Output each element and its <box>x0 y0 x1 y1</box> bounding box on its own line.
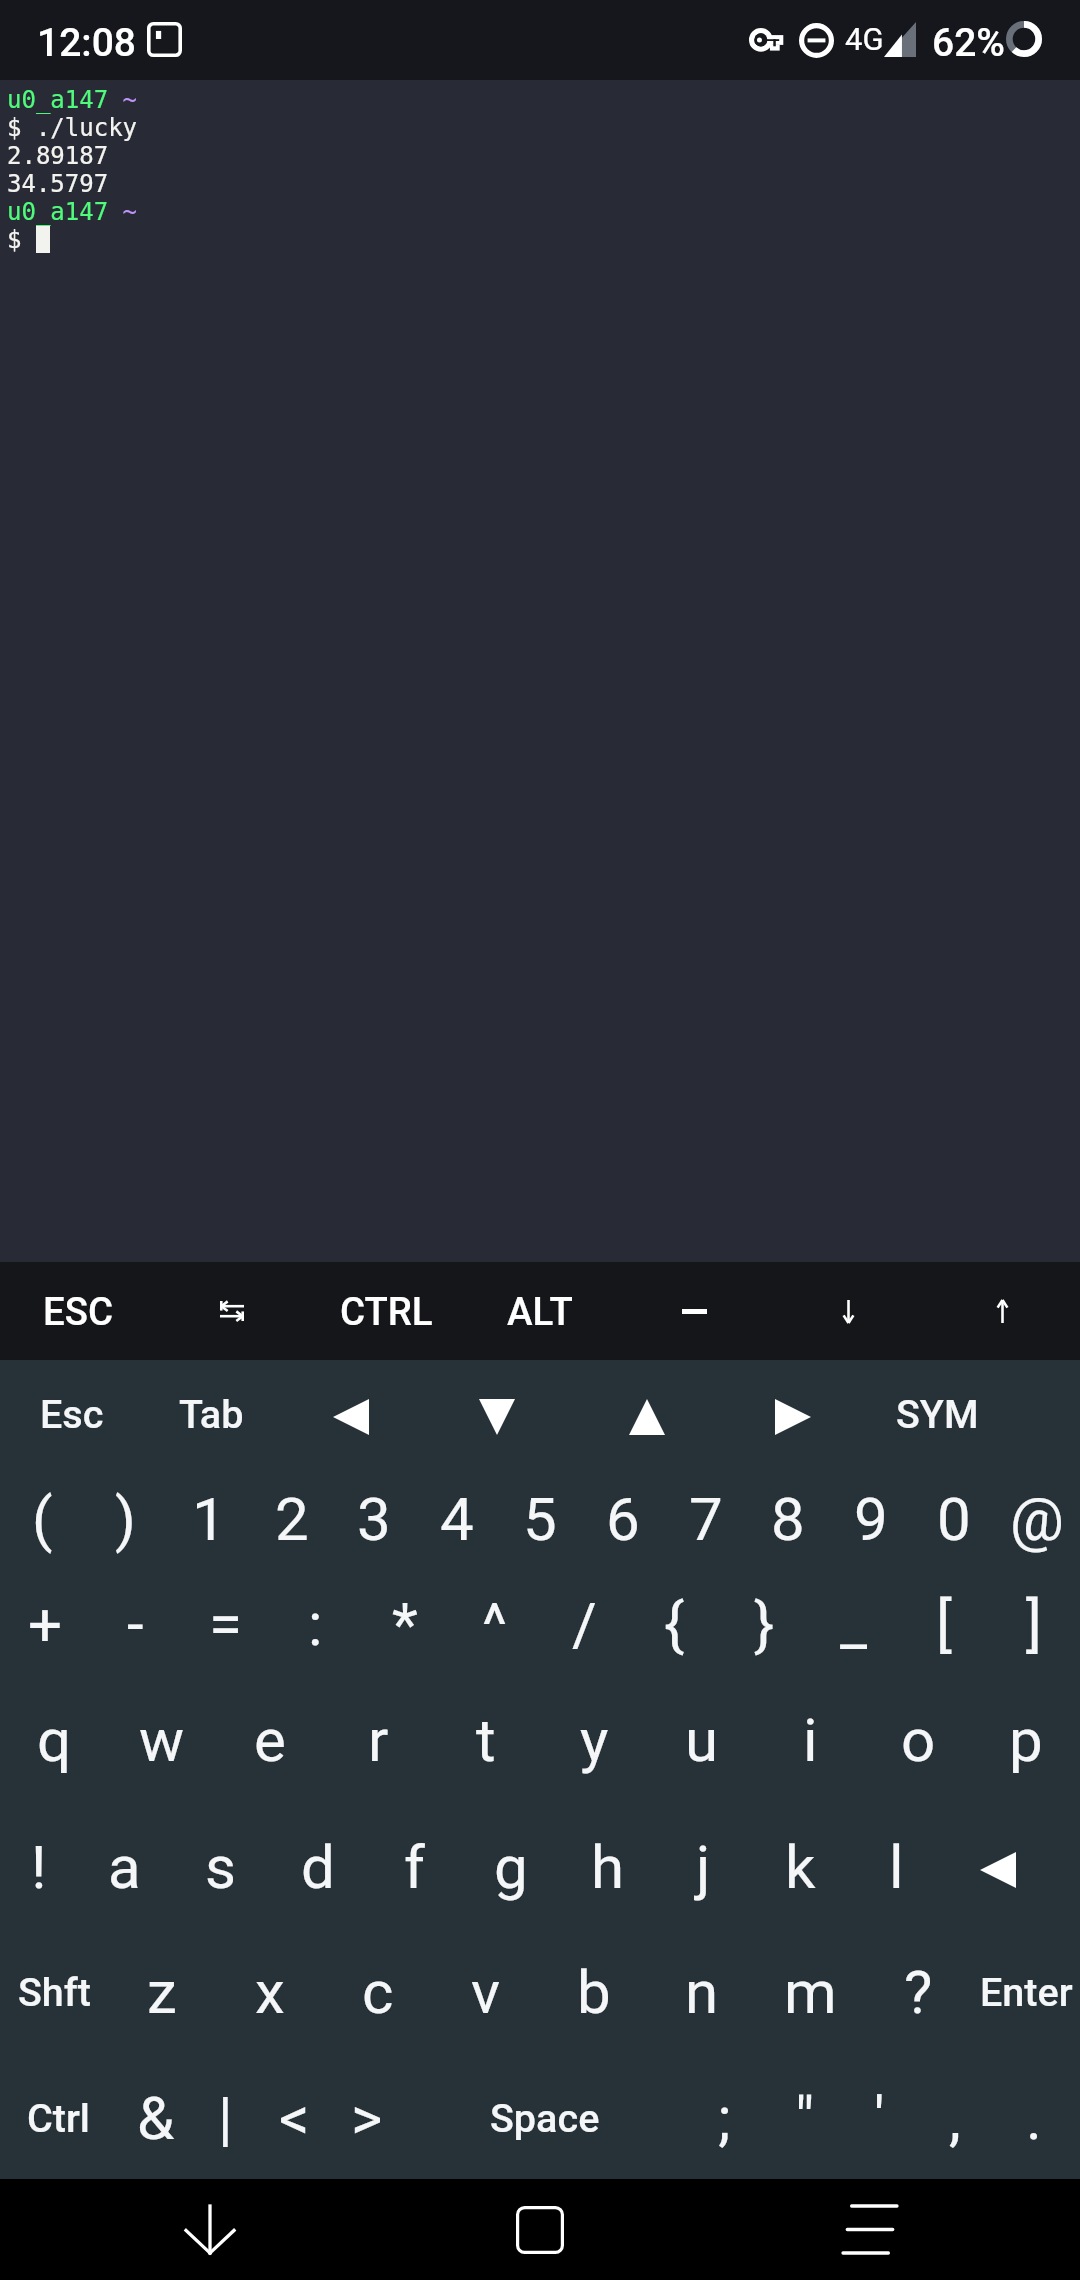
button[interactable]: : <box>270 1566 360 1682</box>
button[interactable]: e <box>216 1682 324 1798</box>
button[interactable]: ESC <box>1 1262 155 1360</box>
button[interactable]: 4 <box>415 1461 498 1577</box>
button[interactable]: n <box>648 1934 756 2050</box>
button[interactable]: u <box>648 1682 756 1798</box>
staticText: 7 <box>689 1484 723 1554</box>
staticText: 4 <box>440 1484 474 1554</box>
button[interactable]: " <box>767 2060 842 2176</box>
button[interactable]: < <box>258 2060 331 2176</box>
button[interactable]: p <box>972 1682 1080 1798</box>
button[interactable]: f <box>366 1809 463 1925</box>
button[interactable]: [ <box>899 1566 989 1682</box>
button[interactable]: Recent apps <box>800 2179 940 2280</box>
staticText: < <box>279 2083 310 2153</box>
staticText: u <box>685 1705 719 1775</box>
button[interactable]: | <box>191 2060 260 2176</box>
staticText: , <box>949 2083 961 2153</box>
button[interactable]: v <box>432 1934 540 2050</box>
button[interactable]: ] <box>989 1566 1079 1682</box>
button[interactable]: s <box>172 1809 269 1925</box>
button[interactable]: _ <box>809 1566 899 1682</box>
staticText: ? <box>904 1957 933 2027</box>
staticText: z <box>147 1957 177 2027</box>
button[interactable]: ( <box>1 1461 84 1577</box>
button[interactable]: q <box>0 1682 108 1798</box>
button[interactable]: Space <box>455 2060 635 2176</box>
button[interactable]: + <box>0 1566 90 1682</box>
staticText: : <box>308 1589 323 1659</box>
button[interactable]: Minus <box>617 1262 771 1360</box>
button[interactable]: r <box>324 1682 432 1798</box>
button[interactable]: t <box>432 1682 540 1798</box>
staticText: ] <box>1026 1589 1042 1659</box>
button[interactable]: Tab <box>155 1262 309 1360</box>
button[interactable]: Enter <box>972 1934 1080 2050</box>
button[interactable]: Down <box>422 1356 572 1472</box>
button[interactable]: Shft <box>0 1934 108 2050</box>
button[interactable]: h <box>559 1809 656 1925</box>
button[interactable]: 2 <box>250 1461 333 1577</box>
button[interactable]: Esc <box>2 1356 142 1472</box>
button[interactable]: 0 <box>912 1461 995 1577</box>
button[interactable]: Backspace <box>947 1809 1048 1925</box>
button[interactable]: > <box>278 2060 456 2176</box>
button[interactable]: j <box>655 1809 752 1925</box>
other: Left <box>333 1399 369 1435</box>
staticText: c <box>362 1957 394 2027</box>
button[interactable]: ! <box>0 1809 81 1925</box>
button[interactable]: & <box>121 2060 190 2176</box>
button[interactable]: @ <box>995 1461 1078 1577</box>
button[interactable]: Down <box>771 1262 925 1360</box>
button[interactable]: c <box>324 1934 432 2050</box>
button[interactable]: Left <box>277 1356 424 1472</box>
button[interactable]: i <box>756 1682 864 1798</box>
button[interactable]: ? <box>864 1934 972 2050</box>
button[interactable]: ) <box>84 1461 167 1577</box>
button[interactable]: ; <box>685 2060 764 2176</box>
button[interactable]: a <box>76 1809 173 1925</box>
button[interactable]: = <box>180 1566 270 1682</box>
staticText: " <box>795 2083 815 2153</box>
staticText: 12:08 <box>37 20 137 66</box>
button[interactable]: g <box>462 1809 559 1925</box>
button[interactable]: ' <box>842 2060 917 2176</box>
button[interactable]: Back <box>140 2179 280 2280</box>
button[interactable]: - <box>90 1566 180 1682</box>
button[interactable]: x <box>216 1934 324 2050</box>
button[interactable]: k <box>752 1809 849 1925</box>
button[interactable]: Up <box>573 1356 720 1472</box>
button[interactable]: Tab <box>142 1356 281 1472</box>
button[interactable]: o <box>864 1682 972 1798</box>
staticText: 4G <box>845 21 884 57</box>
button[interactable]: 1 <box>167 1461 250 1577</box>
button[interactable]: , <box>915 2060 994 2176</box>
button[interactable]: } <box>719 1566 809 1682</box>
button[interactable]: CTRL <box>309 1262 463 1360</box>
button[interactable]: 5 <box>498 1461 581 1577</box>
button[interactable]: Right <box>721 1356 865 1472</box>
staticText: 5 <box>523 1484 557 1554</box>
button[interactable]: / <box>539 1566 629 1682</box>
button[interactable]: w <box>108 1682 216 1798</box>
button[interactable]: * <box>360 1566 450 1682</box>
button[interactable]: z <box>108 1934 216 2050</box>
button[interactable]: y <box>540 1682 648 1798</box>
button[interactable]: d <box>269 1809 366 1925</box>
button[interactable]: 3 <box>332 1461 415 1577</box>
button[interactable]: ^ <box>450 1566 540 1682</box>
button[interactable]: { <box>629 1566 719 1682</box>
button[interactable]: m <box>756 1934 864 2050</box>
button[interactable]: b <box>540 1934 648 2050</box>
button[interactable]: 8 <box>746 1461 829 1577</box>
button[interactable]: . <box>994 2060 1073 2176</box>
button[interactable]: 9 <box>829 1461 912 1577</box>
button[interactable]: 6 <box>581 1461 664 1577</box>
button[interactable]: l <box>846 1809 947 1925</box>
staticText: _ <box>840 1589 868 1659</box>
button[interactable]: Home <box>470 2179 610 2280</box>
button[interactable]: ALT <box>463 1262 617 1360</box>
button[interactable]: Up <box>925 1262 1079 1360</box>
button[interactable]: 7 <box>664 1461 747 1577</box>
button[interactable]: Ctrl <box>10 2060 107 2176</box>
button[interactable]: SYM <box>865 1356 1009 1472</box>
